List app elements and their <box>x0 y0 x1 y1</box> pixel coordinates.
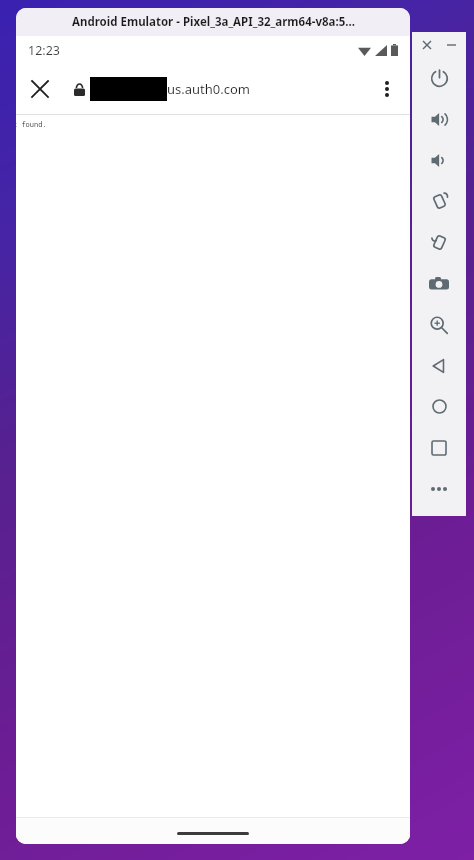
button[interactable]: Rotate right <box>412 222 466 263</box>
button[interactable]: Back <box>412 345 466 386</box>
button[interactable]: Take screenshot <box>412 263 466 304</box>
button[interactable]: Volume up <box>412 99 466 140</box>
staticText: 12:23 <box>28 42 60 59</box>
button[interactable]: Minimize <box>441 35 461 55</box>
button[interactable]: Power <box>412 58 466 99</box>
button[interactable]: Close <box>16 65 64 113</box>
button[interactable]: More options <box>364 66 410 112</box>
button[interactable]: Rotate left <box>412 181 466 222</box>
button[interactable]: More <box>412 468 466 509</box>
staticText: t found. <box>16 120 47 130</box>
button[interactable]: Close emulator <box>417 35 437 55</box>
button[interactable]: us.auth0.com <box>90 77 364 101</box>
staticText: Android Emulator - Pixel_3a_API_32_arm64… <box>72 14 355 30</box>
button[interactable]: Volume down <box>412 140 466 181</box>
button[interactable]: Recent apps <box>412 427 466 468</box>
button[interactable]: Zoom <box>412 304 466 345</box>
button[interactable]: Home <box>412 386 466 427</box>
staticText: us.auth0.com <box>167 80 250 98</box>
